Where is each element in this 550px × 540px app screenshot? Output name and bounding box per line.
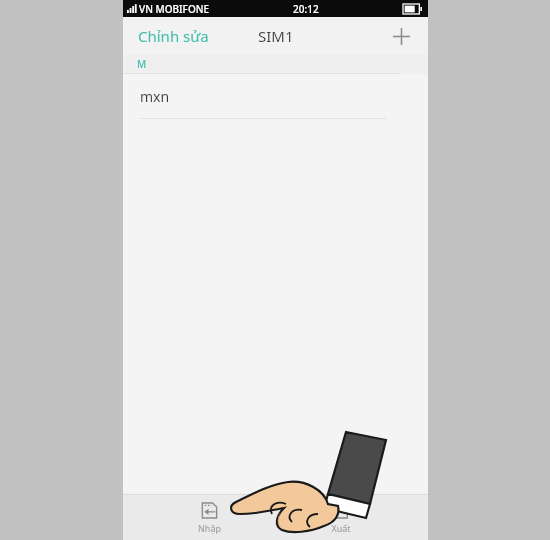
staticText: SIM1 — [258, 26, 294, 46]
button[interactable]: Add contact — [386, 21, 416, 51]
button[interactable]: mxn — [123, 74, 428, 119]
staticText: VN MOBIFONE — [139, 2, 210, 16]
staticText: Xuất — [331, 522, 351, 534]
staticText: mxn — [140, 87, 170, 106]
staticText: M — [137, 57, 147, 71]
button[interactable]: Chỉnh sửa — [123, 20, 224, 52]
button[interactable]: Nhập — [186, 499, 233, 537]
button[interactable]: Xuất — [319, 499, 363, 537]
staticText: Nhập — [198, 522, 221, 534]
staticText: 20:12 — [293, 2, 319, 16]
